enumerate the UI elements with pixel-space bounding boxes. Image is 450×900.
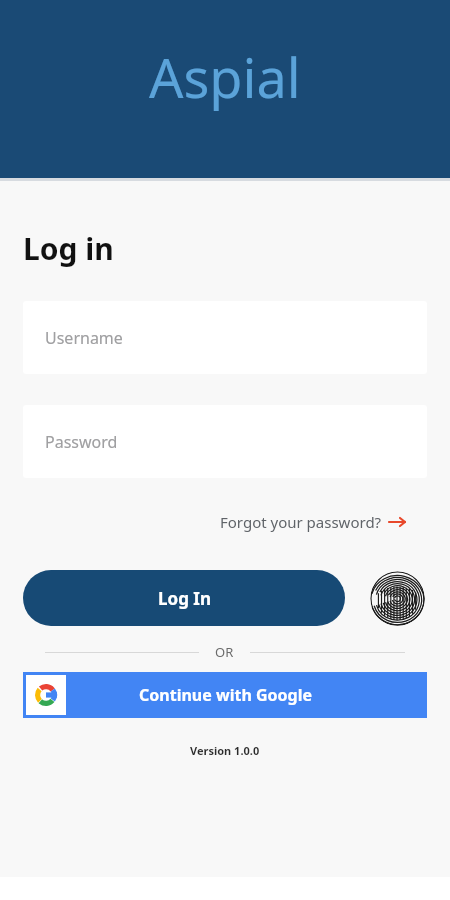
staticText: Version 1.0.0 [190, 743, 260, 758]
staticText: Aspial [149, 40, 301, 114]
staticText: Continue with Google [139, 684, 312, 706]
staticText: Forgot your password? [220, 512, 382, 532]
button[interactable]: Forgot your password? [214, 508, 411, 536]
staticText: Username [45, 327, 123, 349]
staticText: OR [215, 643, 234, 661]
button[interactable]: Password [23, 405, 427, 478]
button[interactable]: Log in with fingerprint [370, 571, 425, 626]
staticText: Log in [23, 228, 114, 269]
staticText: Password [45, 431, 118, 453]
button[interactable]: Username [23, 301, 427, 374]
button[interactable]: Log In [23, 570, 345, 626]
button[interactable]: Continue with Google [23, 672, 427, 718]
staticText: Log In [158, 587, 211, 610]
